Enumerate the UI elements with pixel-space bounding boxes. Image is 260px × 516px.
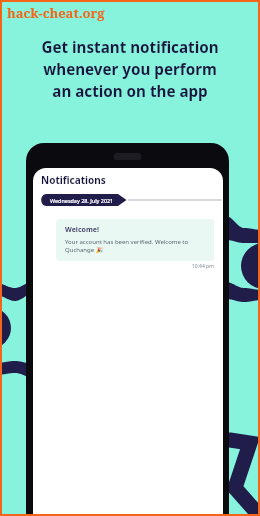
staticText: Wednesday 28. July 2021 — [50, 197, 114, 204]
staticText: Welcome! — [65, 225, 99, 235]
staticText: Your account has been verified. Welcome … — [65, 238, 189, 254]
staticText: Get instant notification whenever you pe… — [41, 37, 219, 101]
staticText: hack-cheat.org — [7, 4, 105, 22]
staticText: Notifications — [41, 173, 106, 187]
staticText: 10:44 pm — [192, 263, 214, 270]
button[interactable]: Welcome! — [56, 219, 214, 261]
